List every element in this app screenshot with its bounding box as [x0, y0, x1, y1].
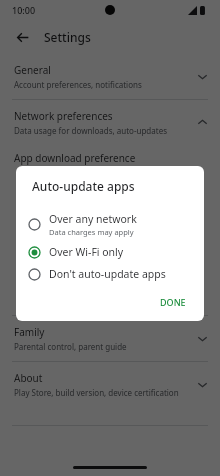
- button[interactable]: Over any network: [16, 208, 204, 241]
- staticText: Auto-update apps: [32, 178, 135, 194]
- button[interactable]: Don't auto-update apps: [16, 263, 204, 285]
- staticText: Don't auto-update apps: [49, 267, 166, 281]
- staticText: Over any network: [49, 212, 137, 226]
- staticText: Over Wi-Fi only: [49, 245, 124, 259]
- button[interactable]: General: [0, 54, 220, 99]
- button[interactable]: DONE: [152, 291, 194, 313]
- staticText: App download preference: [14, 151, 136, 165]
- staticText: General: [14, 63, 51, 77]
- button[interactable]: Network preferences: [0, 100, 220, 145]
- staticText: Network preferences: [14, 109, 113, 123]
- staticText: About: [14, 371, 43, 385]
- button[interactable]: Back: [10, 25, 34, 49]
- staticText: Data charges may apply: [49, 227, 134, 237]
- staticText: Parental control, parent guide: [14, 341, 127, 352]
- staticText: Settings: [44, 29, 91, 45]
- staticText: 10:00: [12, 4, 36, 16]
- button[interactable]: About: [0, 362, 220, 407]
- button[interactable]: Family: [0, 316, 220, 361]
- staticText: Data usage for downloads, auto-updates: [14, 125, 167, 136]
- staticText: Account preferences, notifications: [14, 79, 142, 90]
- staticText: Family: [14, 325, 45, 339]
- staticText: Play Store, build version, device certif…: [14, 387, 179, 398]
- button[interactable]: Over Wi-Fi only: [16, 241, 204, 263]
- staticText: DONE: [160, 296, 186, 308]
